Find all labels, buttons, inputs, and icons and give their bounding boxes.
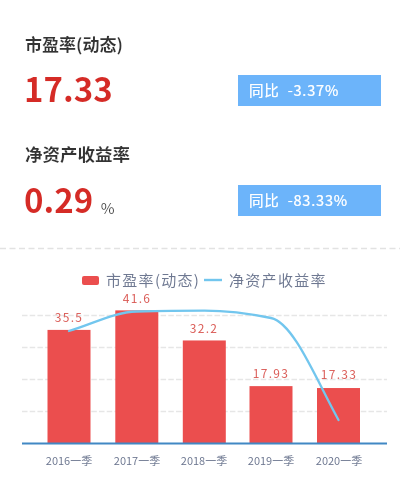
- button[interactable]: 同比 -3.37%: [238, 75, 381, 106]
- staticText: 市盈率(动态): [25, 31, 123, 56]
- staticText: 2018一季: [169, 452, 239, 468]
- staticText: 2017一季: [102, 452, 172, 468]
- staticText: 2019一季: [236, 452, 306, 468]
- button[interactable]: 市盈率(动态): [82, 269, 194, 291]
- staticText: 市盈率(动态): [106, 269, 201, 291]
- staticText: 35.5: [34, 308, 104, 325]
- staticText: 0.29: [24, 175, 94, 223]
- staticText: 2020一季: [304, 452, 374, 468]
- staticText: 同比 -83.33%: [249, 189, 348, 210]
- staticText: 净资产收益率: [229, 269, 327, 291]
- button[interactable]: 同比 -83.33%: [238, 185, 381, 216]
- staticText: 2016一季: [34, 452, 104, 468]
- staticText: 净资产收益率: [25, 141, 130, 166]
- staticText: 17.33: [24, 64, 113, 112]
- staticText: 32.2: [169, 319, 239, 336]
- staticText: 同比 -3.37%: [249, 79, 340, 100]
- staticText: %: [94, 197, 115, 219]
- staticText: 41.6: [102, 289, 172, 306]
- button[interactable]: 净资产收益率: [204, 269, 320, 291]
- staticText: 17.33: [304, 365, 374, 382]
- staticText: 17.93: [236, 364, 306, 381]
